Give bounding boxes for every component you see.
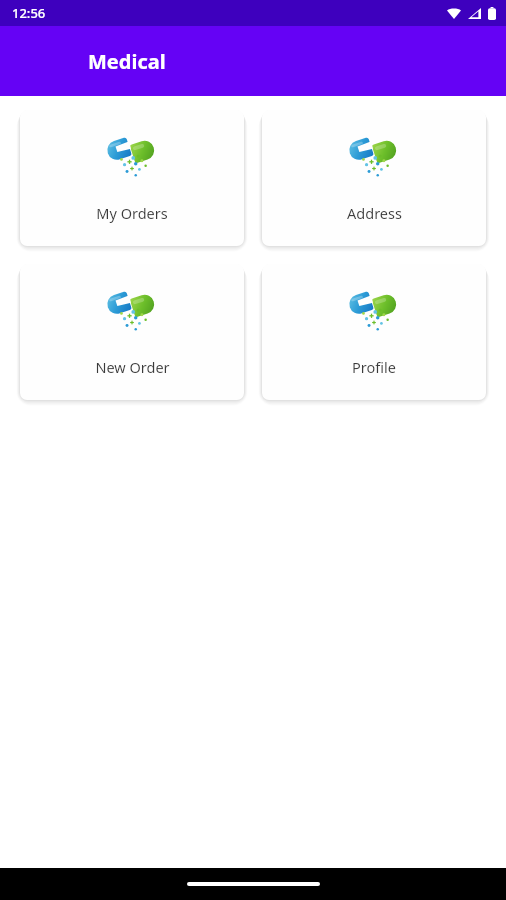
staticText: My Orders	[96, 203, 168, 223]
staticText: 12:56	[12, 4, 46, 22]
button[interactable]: Address	[262, 110, 486, 246]
staticText: Address	[347, 203, 402, 223]
staticText: Medical	[88, 48, 166, 75]
button[interactable]: New Order	[20, 264, 244, 400]
button[interactable]: Profile	[262, 264, 486, 400]
staticText: New Order	[95, 357, 170, 377]
staticText: Profile	[352, 357, 396, 377]
button[interactable]: My Orders	[20, 110, 244, 246]
